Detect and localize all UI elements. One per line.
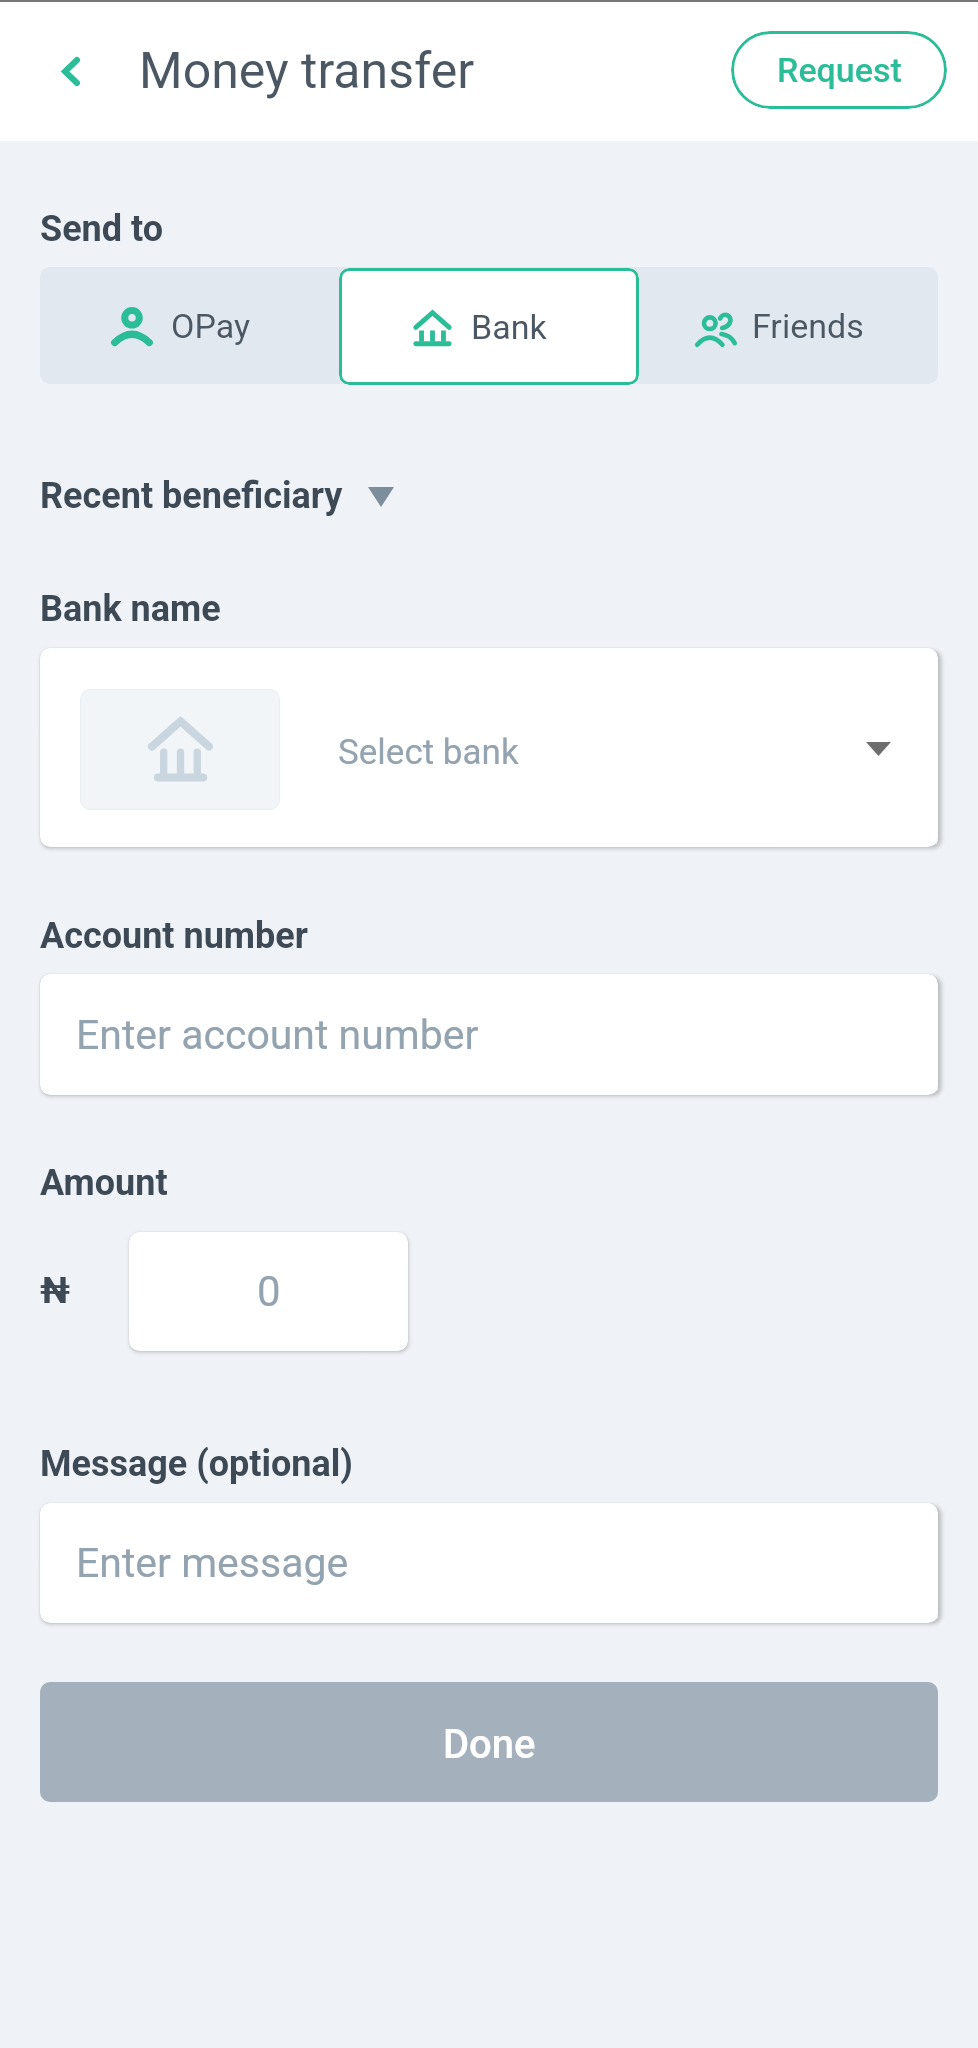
staticText: Recent beneficiary [40, 475, 343, 517]
staticText: Account number [40, 915, 308, 957]
staticText: Enter message [76, 1539, 349, 1587]
button[interactable]: Back [38, 39, 102, 103]
button[interactable]: Bank [339, 268, 639, 385]
staticText: ₦ [40, 1269, 71, 1312]
button[interactable]: Enter account number [40, 974, 938, 1095]
button[interactable]: 0 [129, 1232, 408, 1351]
button[interactable]: Select bank [40, 648, 938, 847]
staticText: Request [777, 50, 902, 90]
staticText: Bank name [40, 588, 221, 630]
staticText: Message (optional) [40, 1443, 353, 1485]
button[interactable]: Request [731, 31, 947, 109]
button[interactable]: Recent beneficiary [40, 466, 394, 525]
staticText: Money transfer [139, 42, 475, 101]
staticText: Enter account number [76, 1011, 479, 1059]
staticText: Select bank [338, 732, 519, 773]
staticText: Friends [752, 306, 864, 346]
staticText: Bank [471, 307, 547, 347]
staticText: OPay [171, 306, 250, 346]
staticText: Done [443, 1721, 536, 1768]
staticText: Amount [40, 1162, 168, 1204]
button[interactable]: Done [40, 1682, 938, 1802]
staticText: 0 [257, 1267, 281, 1316]
button[interactable]: Friends [639, 267, 938, 384]
staticText: Send to [40, 208, 164, 250]
button[interactable]: OPay [40, 267, 339, 384]
button[interactable]: Enter message [40, 1503, 938, 1623]
